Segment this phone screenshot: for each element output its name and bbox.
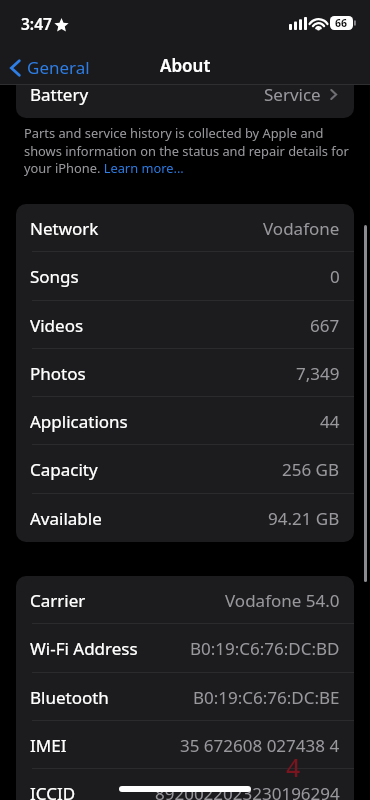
staticText: Battery [30, 83, 89, 106]
button[interactable]: Bluetooth [16, 673, 354, 721]
button[interactable]: ICCID [16, 769, 354, 800]
staticText: Vodafone [263, 217, 340, 240]
button[interactable]: Available [16, 494, 354, 542]
staticText: 44 [320, 410, 340, 433]
staticText: 0 [330, 265, 340, 288]
staticText: 94.21 GB [268, 507, 340, 530]
staticText: Capacity [30, 458, 98, 481]
staticText: Photos [30, 362, 86, 385]
staticText: 256 GB [282, 458, 340, 481]
staticText: Available [30, 507, 102, 530]
staticText: Parts and service history is collected b… [24, 124, 353, 177]
staticText: General [27, 56, 90, 79]
button[interactable]: Parts and service history is collected b… [24, 124, 353, 177]
button[interactable]: Photos [16, 349, 354, 397]
button[interactable]: Battery [16, 70, 354, 118]
staticText: 8920022023230196294 [155, 782, 340, 800]
staticText: 66 [335, 16, 348, 30]
staticText: Network [30, 217, 99, 240]
staticText: 4 [286, 750, 301, 784]
staticText: Service [264, 83, 321, 106]
button[interactable]: IMEI [16, 721, 354, 769]
button[interactable]: Wi-Fi Address [16, 624, 354, 672]
staticText: Applications [30, 410, 128, 433]
button[interactable]: Applications [16, 397, 354, 445]
staticText: Videos [30, 314, 84, 337]
button[interactable]: General [3, 53, 93, 82]
staticText: Carrier [30, 589, 86, 612]
staticText: Bluetooth [30, 686, 109, 709]
staticText: ICCID [30, 782, 76, 800]
button[interactable]: Videos [16, 301, 354, 349]
button[interactable]: Network [16, 204, 354, 252]
staticText: 35 672608 027438 4 [180, 734, 340, 757]
button[interactable]: Songs [16, 252, 354, 300]
button[interactable]: Carrier [16, 576, 354, 624]
staticText: B0:19:C6:76:DC:BD [190, 637, 340, 660]
staticText: 7,349 [296, 362, 340, 385]
staticText: 667 [310, 314, 340, 337]
staticText: Wi-Fi Address [30, 637, 138, 660]
staticText: Songs [30, 265, 79, 288]
staticText: Vodafone 54.0 [225, 589, 340, 612]
staticText: B0:19:C6:76:DC:BE [193, 686, 340, 709]
button[interactable]: Capacity [16, 445, 354, 493]
staticText: About [160, 54, 211, 77]
staticText: IMEI [30, 734, 67, 757]
staticText: 3:47 [21, 13, 52, 34]
